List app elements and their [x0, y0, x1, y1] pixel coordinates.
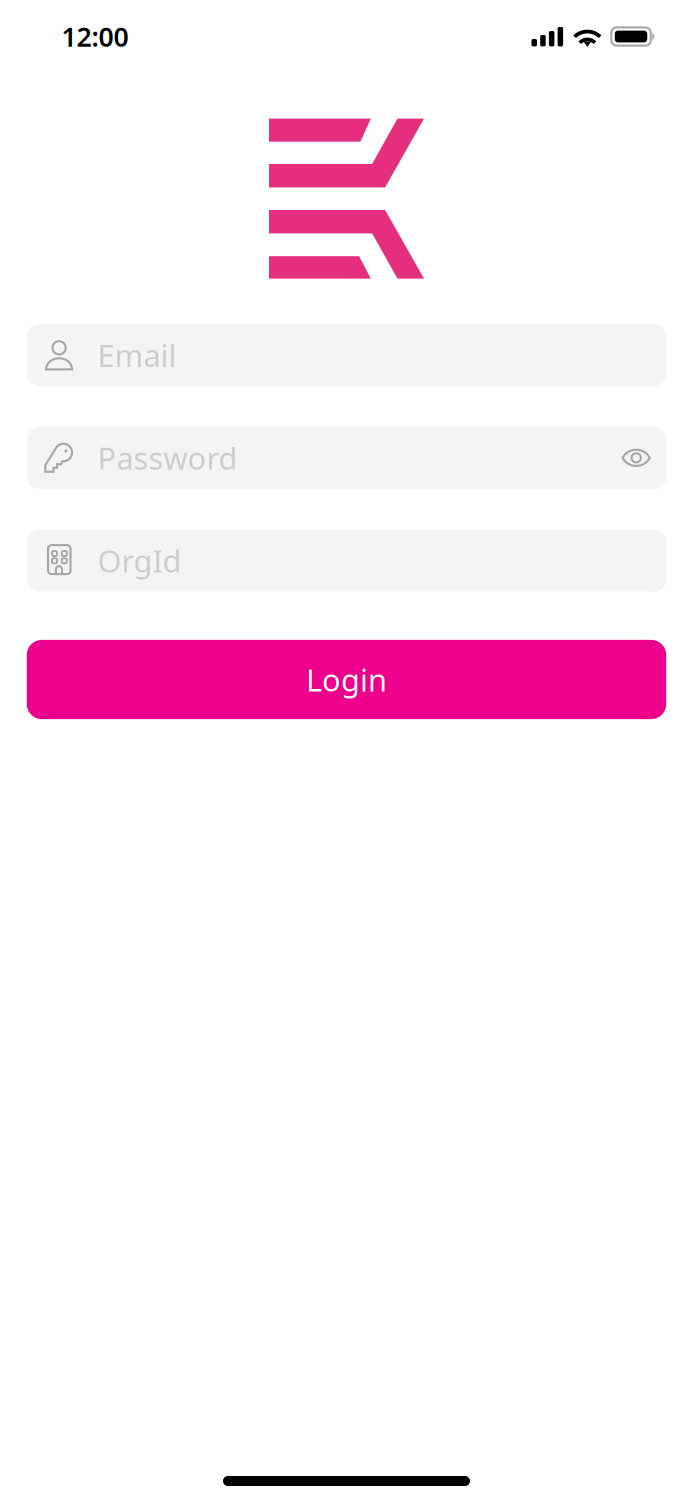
staticText: Email	[98, 335, 177, 375]
button[interactable]: Password	[27, 427, 666, 489]
button[interactable]: Email	[27, 324, 666, 386]
staticText: Password	[98, 437, 238, 478]
staticText: 12:00	[61, 19, 128, 54]
button[interactable]: OrgId	[27, 529, 666, 591]
staticText: Login	[306, 659, 387, 700]
button[interactable]: Show password	[620, 442, 652, 474]
staticText: OrgId	[98, 540, 182, 581]
button[interactable]: Login	[27, 640, 666, 719]
